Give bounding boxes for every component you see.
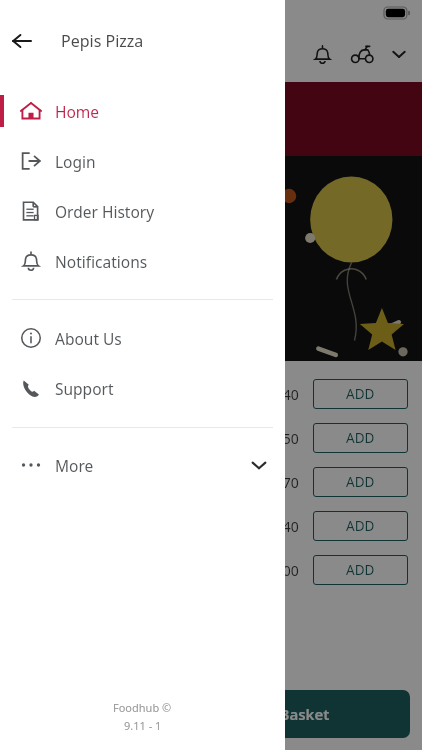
staticText: side	[16, 228, 86, 274]
staticText: £5.40	[263, 385, 299, 404]
staticText: View Basket	[241, 704, 330, 724]
staticText: Support	[55, 378, 114, 399]
button[interactable]: Delivery	[342, 34, 382, 74]
button[interactable]: Item 1	[14, 372, 408, 416]
button[interactable]: Home	[0, 89, 285, 133]
staticText: Pepis Pizza	[61, 30, 144, 52]
staticText: Order History	[55, 201, 155, 222]
staticText: Foodhub ©	[113, 700, 172, 715]
staticText: ADD	[346, 561, 375, 579]
button[interactable]: Item 5	[14, 548, 408, 592]
button[interactable]: Back	[0, 25, 44, 57]
button[interactable]: Login	[0, 139, 285, 183]
staticText: This store is closed and will open	[18, 98, 246, 117]
staticText: £7.40	[263, 517, 299, 536]
staticText: We Can	[16, 182, 142, 228]
staticText: ADD	[346, 473, 375, 491]
staticText: ADD	[346, 429, 375, 447]
button[interactable]: Item 2	[14, 416, 408, 460]
staticText: 9.11 - 1	[124, 718, 162, 733]
staticText: £6.00	[263, 561, 299, 580]
staticText: ADD	[346, 517, 375, 535]
button[interactable]: ADD	[313, 423, 408, 453]
staticText: ADD	[346, 385, 375, 403]
button[interactable]: ADD	[313, 511, 408, 541]
button[interactable]: ADD	[313, 555, 408, 585]
staticText: Notifications	[55, 251, 148, 272]
button[interactable]: Order History	[0, 189, 285, 233]
button[interactable]: Notifications	[302, 34, 342, 74]
staticText: Login	[55, 151, 96, 172]
button[interactable]: About Us	[0, 316, 285, 360]
button[interactable]: Item 3	[14, 460, 408, 504]
staticText: Home	[55, 101, 100, 122]
button[interactable]: ADD	[313, 467, 408, 497]
staticText: £3.50	[263, 429, 299, 448]
staticText: ne	[16, 274, 59, 320]
button[interactable]: Expand	[382, 37, 416, 71]
button[interactable]: Item 4	[14, 504, 408, 548]
button[interactable]: Notifications	[0, 239, 285, 283]
staticText: More	[55, 455, 94, 476]
button[interactable]: Support	[0, 366, 285, 410]
staticText: About Us	[55, 328, 122, 349]
staticText: £5.70	[263, 473, 299, 492]
staticText: Item 1	[14, 385, 263, 404]
button[interactable]: View Basket	[160, 690, 410, 738]
button[interactable]: ADD	[313, 379, 408, 409]
button[interactable]: More	[0, 443, 285, 487]
